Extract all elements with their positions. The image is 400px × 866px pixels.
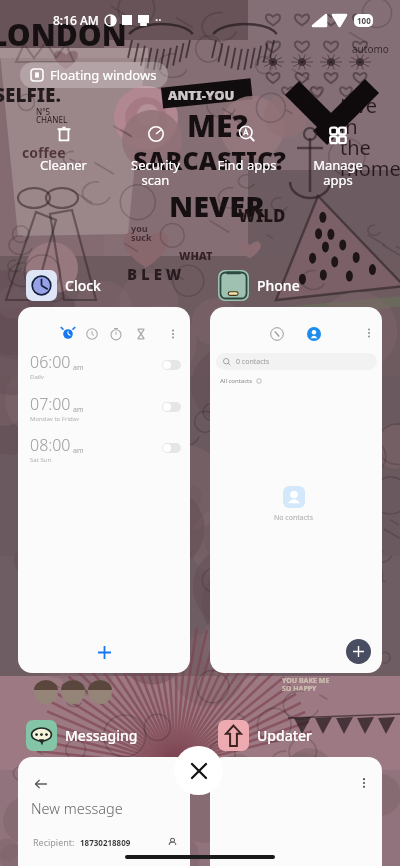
staticText: am [73,446,84,456]
staticText: NEVER [169,186,265,225]
button[interactable] [162,360,181,370]
staticText: Security scan [131,156,180,189]
button[interactable] [162,443,181,453]
staticText: 18730218809 [80,837,131,848]
button[interactable]: Close all [174,746,223,795]
staticText: automo [352,42,389,56]
staticText: Messaging [65,726,138,745]
button[interactable]: Back [34,777,48,791]
button[interactable]: Recent calls [270,327,284,341]
staticText: ·· [155,12,162,28]
staticText: am [73,363,84,373]
staticText: ME? [187,105,248,146]
button[interactable]: Manage apps [292,124,383,189]
button[interactable]: Back [18,757,190,866]
button[interactable]: Recipient: [33,836,178,848]
staticText: WILD [238,204,286,227]
staticText: am [73,405,84,415]
staticText: Cleaner [40,156,87,174]
staticText: SARCASTIC? [133,143,286,177]
staticText: 100 [357,15,371,26]
staticText: SELFIE. [0,82,61,108]
staticText: LONDON [0,14,127,55]
staticText: 07:00 [30,393,71,415]
button[interactable]: Find apps [201,124,292,174]
button[interactable]: More options [167,328,179,340]
staticText: Sat Sun [30,456,52,462]
button[interactable]: Recent calls [210,307,382,673]
button[interactable]: Add alarm [94,642,114,662]
staticText: YOU BAKE ME SO HAPPY [282,676,330,693]
staticText: 06:00 [30,351,71,373]
staticText: Floating windows [50,66,157,84]
staticText: All contacts [220,377,253,385]
button[interactable]: More options [210,757,382,866]
staticText: Find apps [217,156,277,174]
staticText: Clock [65,276,101,295]
staticText: ANTI-YOU [168,86,235,104]
staticText: Live in the moment [340,92,400,182]
staticText: 0 contacts [236,357,270,367]
button[interactable]: More options [363,327,375,339]
button[interactable]: 08:00 [27,434,181,462]
staticText: B L E W [127,264,182,284]
staticText: you suck [131,222,152,244]
button[interactable]: More options [358,777,370,789]
staticText: No contacts [274,513,313,523]
staticText: Recipient: [33,836,75,848]
button[interactable]: Floating windows [20,62,168,88]
button[interactable]: 07:00 [27,393,181,421]
button[interactable]: Add contact [346,639,371,664]
button[interactable]: Messaging [26,719,138,751]
button[interactable]: More options [18,307,190,673]
staticText: coffee [22,143,66,162]
button[interactable] [162,402,181,412]
staticText: Monday to Friday [30,415,80,421]
staticText: N°5 CHANEL [36,106,68,125]
staticText: 08:00 [30,434,71,456]
button[interactable]: 06:00 [27,351,181,379]
staticText: 8:16 AM [53,12,99,28]
button[interactable]: Clock [26,269,101,301]
button[interactable]: Contacts [307,327,321,341]
staticText: New message [31,798,123,818]
button[interactable]: Updater [218,719,313,751]
button[interactable]: Phone [218,269,300,301]
staticText: Daily [30,373,44,379]
button[interactable]: Cleaner [18,124,109,174]
button[interactable]: Security scan [110,124,201,189]
button[interactable]: 0 contacts [216,353,377,370]
staticText: WHAT [179,248,213,263]
staticText: Manage apps [313,156,363,189]
staticText: Updater [257,726,313,745]
button[interactable]: All contacts [220,377,262,385]
staticText: Phone [257,276,300,295]
